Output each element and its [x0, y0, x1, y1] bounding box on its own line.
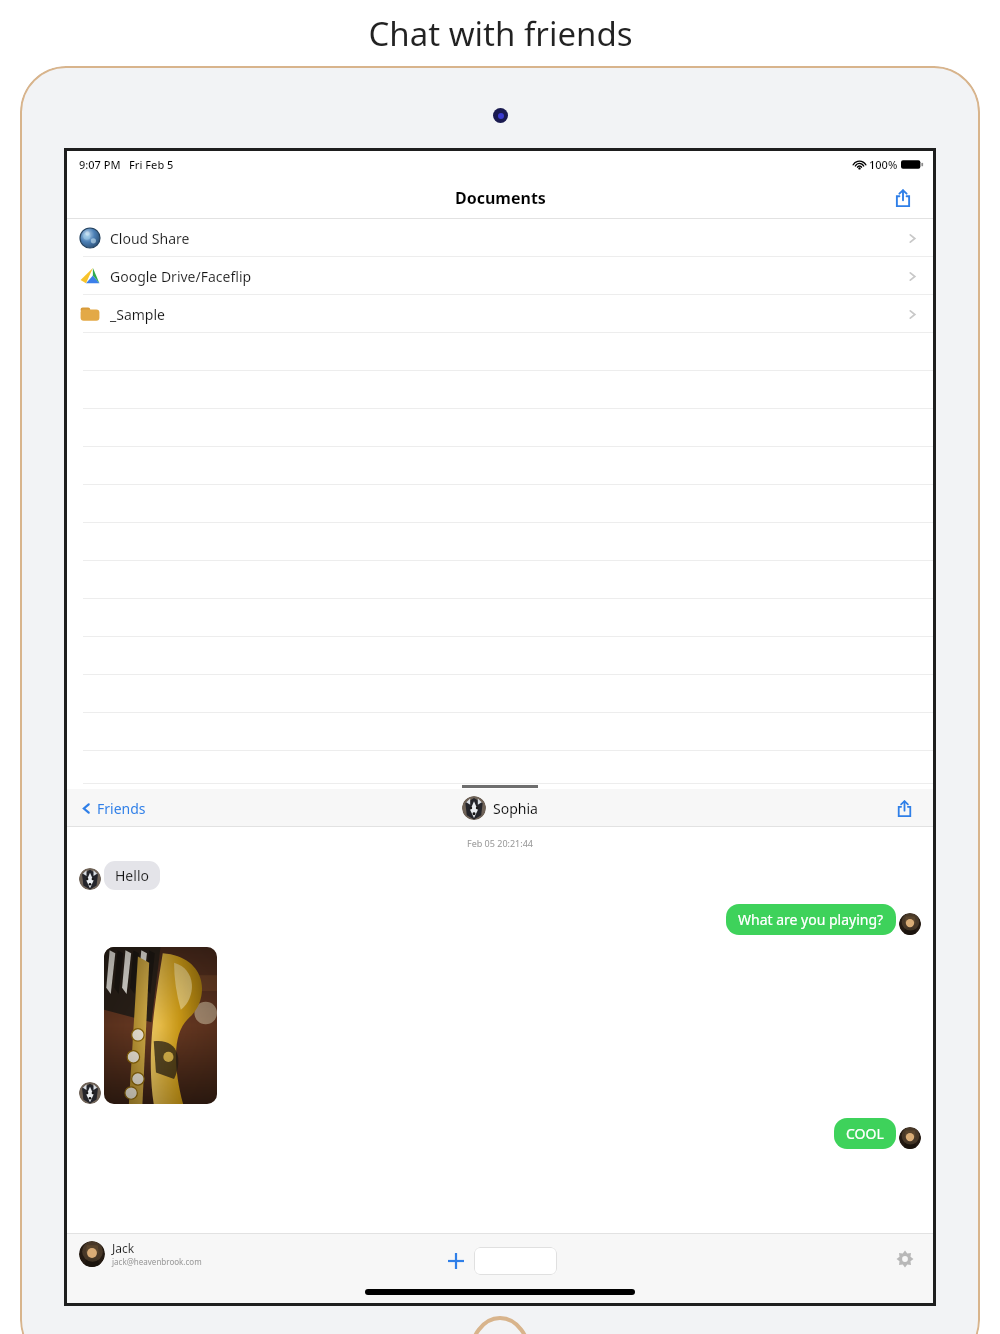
- staticText: jack@heavenbrook.com: [112, 1256, 202, 1267]
- staticText: Sophia: [493, 799, 538, 818]
- button[interactable]: Share: [887, 182, 919, 214]
- button[interactable]: Settings: [891, 1245, 919, 1273]
- staticText: _Sample: [110, 305, 165, 324]
- staticText: Chat with friends: [368, 11, 633, 56]
- staticText: 9:07 PM: [79, 157, 121, 172]
- staticText: Hello: [115, 866, 149, 885]
- button[interactable]: Jack: [79, 1240, 202, 1267]
- button[interactable]: Message input: [474, 1247, 557, 1275]
- button[interactable]: Saxophone photo: [104, 947, 217, 1104]
- button[interactable]: Add attachment: [444, 1249, 468, 1273]
- staticText: What are you playing?: [738, 910, 884, 929]
- button[interactable]: Friends: [77, 795, 150, 822]
- button[interactable]: _Sample: [67, 295, 933, 333]
- staticText: Documents: [455, 187, 546, 209]
- button[interactable]: Sophia: [462, 796, 538, 820]
- staticText: Jack: [112, 1240, 135, 1256]
- button[interactable]: Share conversation: [889, 793, 919, 823]
- staticText: Fri Feb 5: [129, 157, 174, 172]
- staticText: 100%: [869, 157, 898, 172]
- staticText: COOL: [846, 1124, 884, 1143]
- staticText: Friends: [97, 799, 146, 818]
- staticText: Cloud Share: [110, 229, 190, 248]
- button[interactable]: Google Drive/Faceflip: [67, 257, 933, 295]
- button[interactable]: Hello: [104, 861, 160, 890]
- button[interactable]: COOL: [834, 1118, 896, 1149]
- staticText: Google Drive/Faceflip: [110, 267, 252, 286]
- button[interactable]: What are you playing?: [726, 904, 896, 935]
- button[interactable]: Cloud Share: [67, 219, 933, 257]
- staticText: Feb 05 20:21:44: [467, 837, 533, 849]
